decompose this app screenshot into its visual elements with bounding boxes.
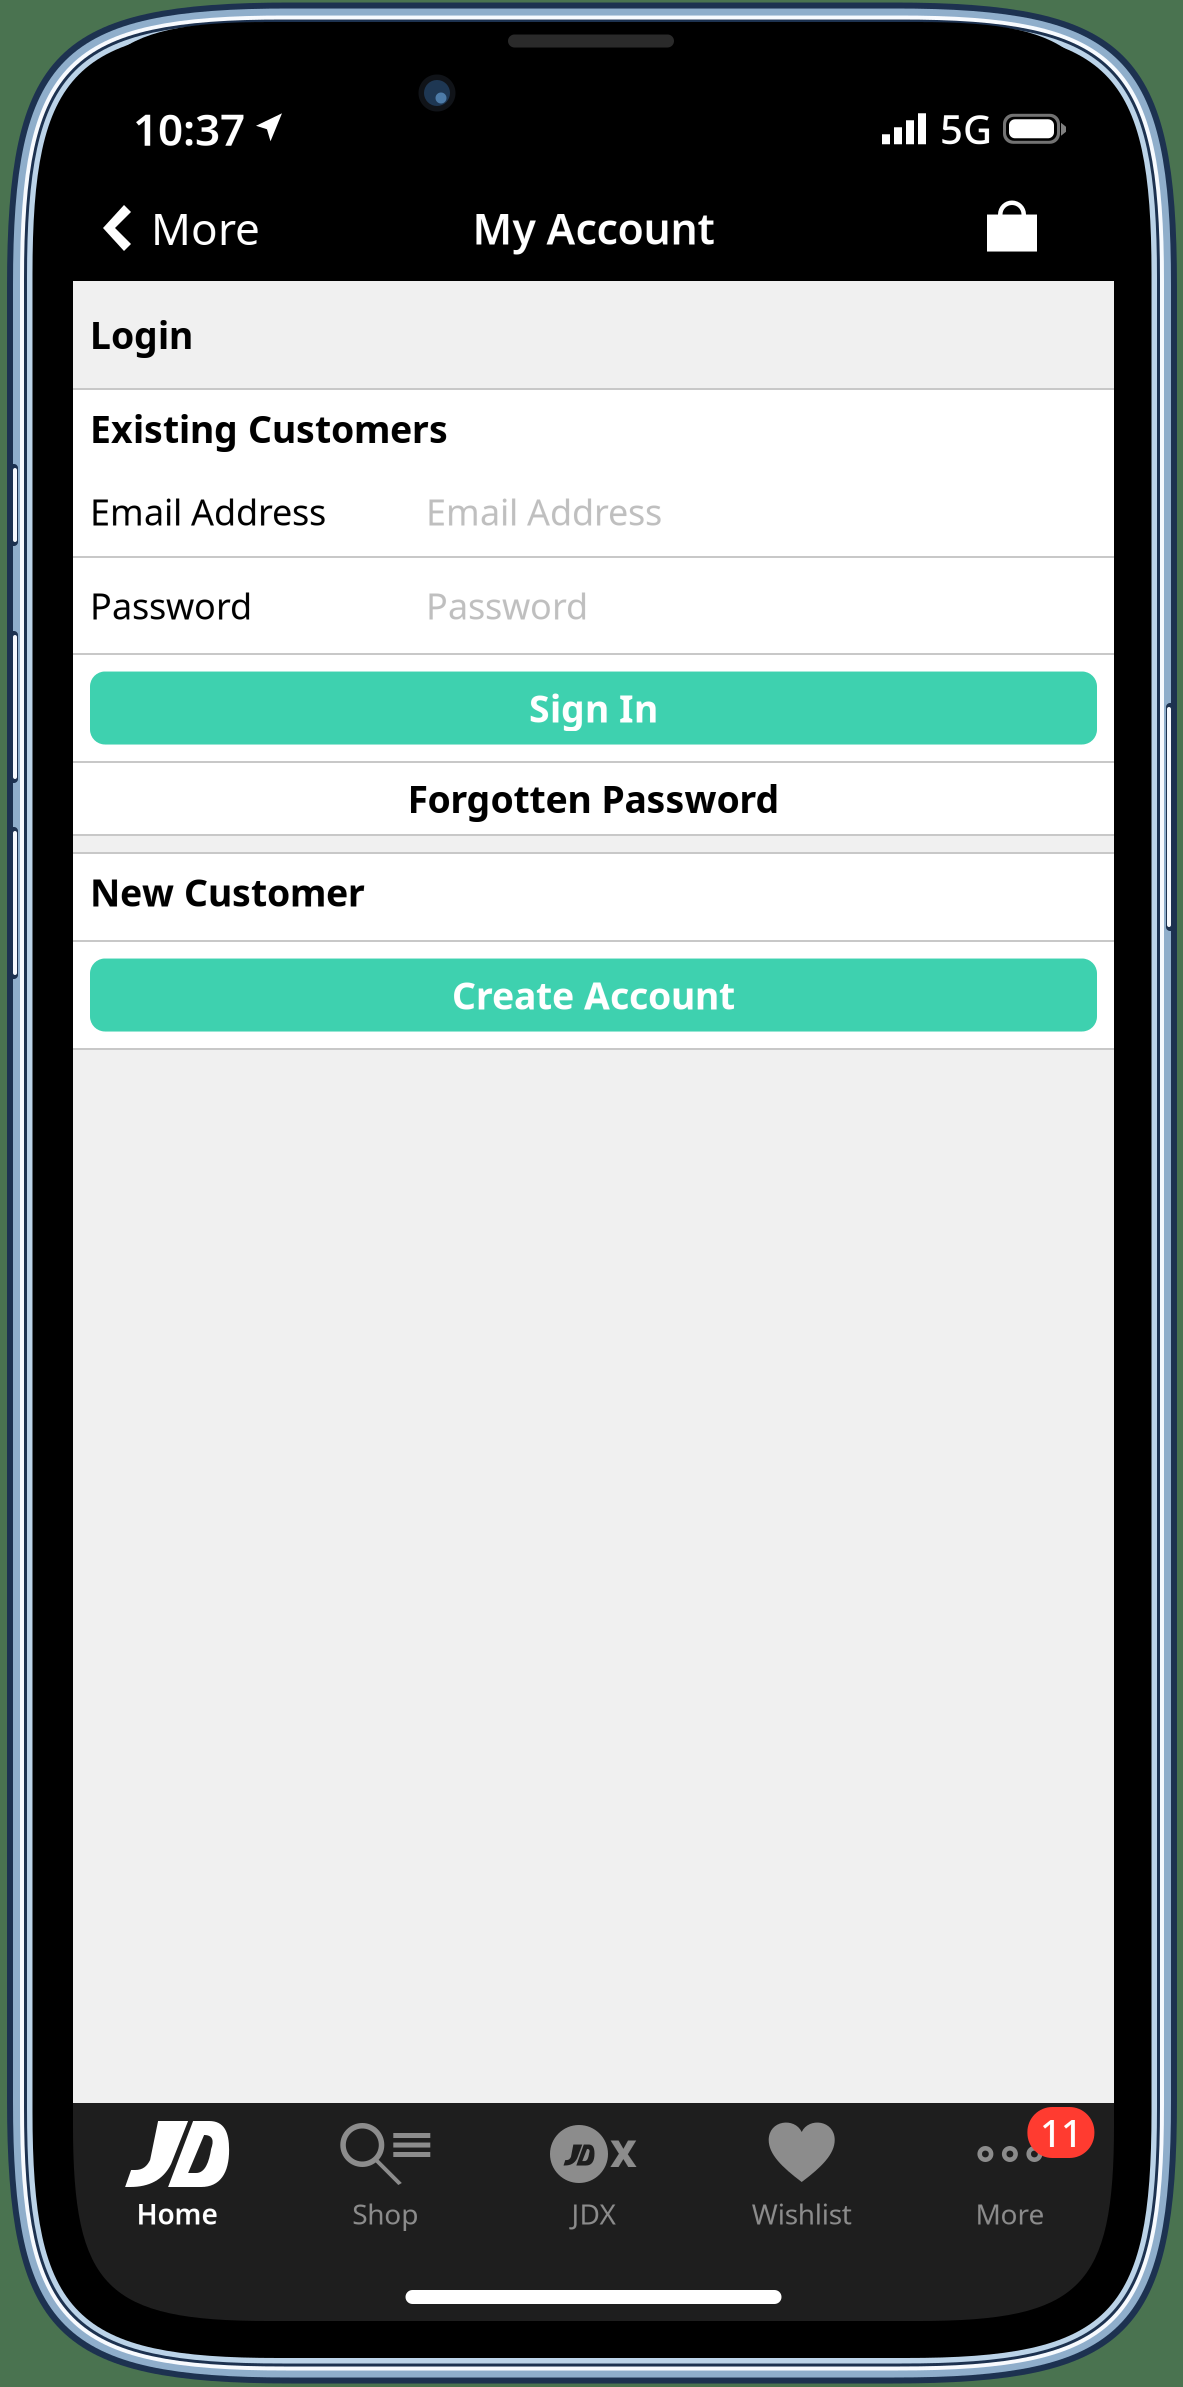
- staticText: 10:37: [133, 100, 245, 158]
- button[interactable]: Basket: [961, 175, 1114, 281]
- staticText: Email Address: [90, 488, 326, 535]
- staticText: Email Address: [426, 488, 662, 535]
- staticText: Login: [90, 310, 193, 359]
- button[interactable]: Forgotten Password: [73, 763, 1114, 834]
- button[interactable]: Sign In: [73, 655, 1114, 761]
- button[interactable]: X: [489, 2103, 698, 2253]
- staticText: Forgotten Password: [407, 774, 779, 823]
- staticText: 11: [1040, 2108, 1082, 2157]
- staticText: Create Account: [452, 970, 735, 1020]
- staticText: Home: [137, 2195, 218, 2232]
- staticText: Wishlist: [752, 2195, 852, 2232]
- button[interactable]: Create Account: [73, 942, 1114, 1048]
- staticText: More: [975, 2195, 1044, 2232]
- staticText: 5G: [940, 102, 992, 155]
- staticText: Shop: [352, 2195, 418, 2232]
- button[interactable]: More: [73, 175, 284, 281]
- staticText: X: [610, 2128, 637, 2178]
- staticText: Password: [90, 582, 252, 629]
- button[interactable]: Wishlist: [698, 2103, 906, 2253]
- staticText: Existing Customers: [90, 404, 448, 453]
- staticText: Password: [426, 582, 588, 629]
- button[interactable]: 11: [906, 2103, 1114, 2253]
- staticText: Sign In: [529, 683, 658, 733]
- button[interactable]: Home: [73, 2103, 281, 2253]
- staticText: New Customer: [90, 867, 365, 917]
- staticText: More: [151, 199, 260, 257]
- staticText: My Account: [472, 200, 714, 256]
- button[interactable]: Shop: [281, 2103, 489, 2253]
- staticText: JDX: [571, 2195, 615, 2232]
